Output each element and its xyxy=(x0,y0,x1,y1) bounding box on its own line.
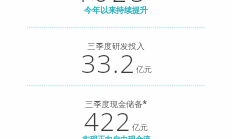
staticText: 今年以来持续提升 xyxy=(84,5,148,15)
staticText: 亿元 xyxy=(136,64,152,74)
staticText: 实现正向自由现金流 xyxy=(82,135,151,139)
button[interactable]: 三季度现金储备* xyxy=(0,94,232,139)
button[interactable]: 今年以来持续提升 xyxy=(0,2,232,18)
staticText: 三季度现金储备* xyxy=(85,98,147,109)
button[interactable]: 三季度研发投入 xyxy=(0,38,232,80)
staticText: 1025 xyxy=(75,0,149,6)
staticText: 亿元 xyxy=(132,122,148,132)
staticText: 422 xyxy=(84,103,132,138)
staticText: 三季度研发投入 xyxy=(87,41,145,51)
staticText: 33.2 xyxy=(81,45,136,80)
button[interactable]: 1025 xyxy=(0,0,232,6)
